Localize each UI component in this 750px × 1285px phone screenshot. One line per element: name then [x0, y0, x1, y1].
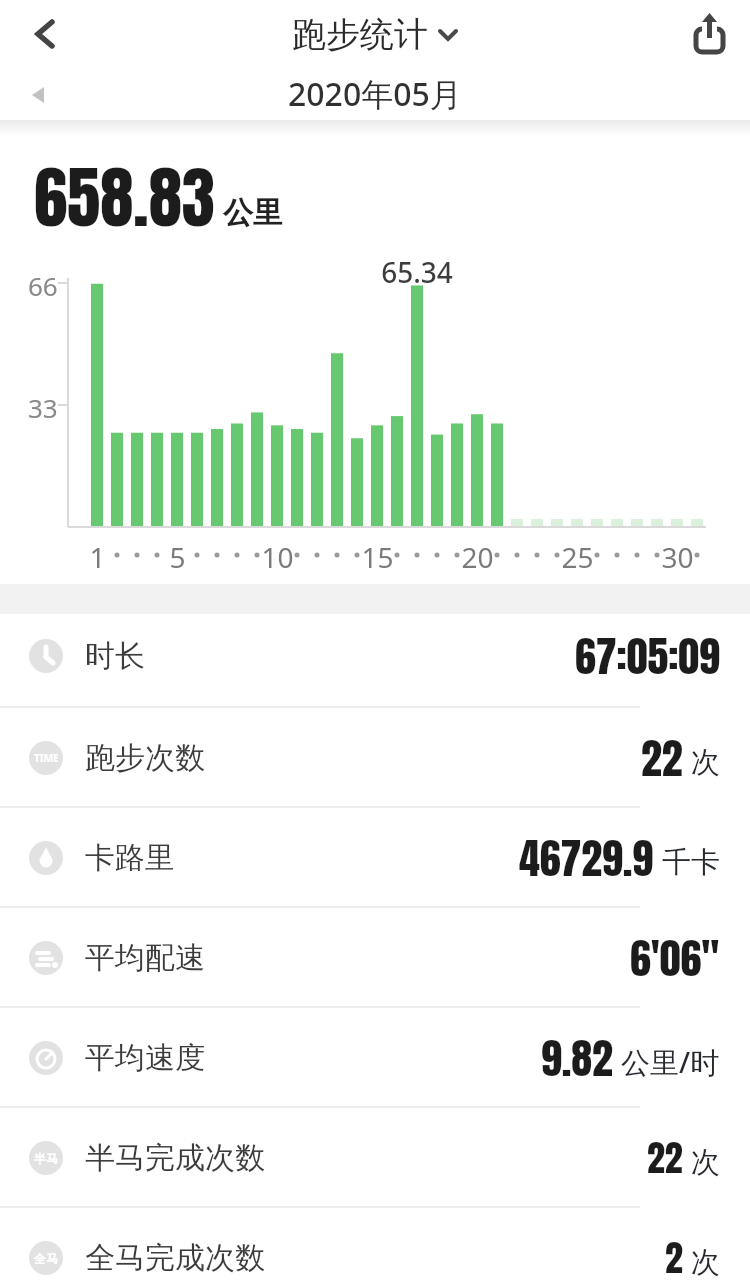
staticText: 半马完成次数 — [85, 1139, 265, 1177]
staticText: 2 — [665, 1231, 683, 1285]
staticText: 跑步次数 — [85, 739, 205, 777]
staticText: 平均速度 — [85, 1039, 205, 1077]
staticText: 全马 — [34, 1251, 58, 1266]
staticText: 平均配速 — [85, 939, 205, 977]
staticText: 33 — [28, 390, 58, 425]
button[interactable]: 卡路里 — [0, 808, 750, 908]
staticText: 5 — [169, 538, 186, 576]
button[interactable]: 时长 — [0, 614, 750, 708]
button[interactable]: 跑步统计 — [292, 13, 458, 56]
button[interactable]: 2020年05月 — [0, 68, 750, 120]
button[interactable]: 全马 — [0, 1208, 750, 1285]
staticText: TIME — [34, 751, 59, 765]
staticText: 跑步统计 — [292, 13, 428, 56]
staticText: 卡路里 — [85, 839, 175, 877]
staticText: 46729.9 — [519, 827, 654, 890]
button[interactable] — [0, 0, 90, 68]
staticText: 2020年05月 — [288, 72, 462, 116]
button[interactable]: 平均速度 — [0, 1008, 750, 1108]
staticText: 66 — [28, 268, 58, 303]
staticText: 67:05:09 — [575, 625, 720, 688]
button[interactable]: 平均配速 — [0, 908, 750, 1008]
staticText: 公里/时 — [621, 1042, 720, 1082]
staticText: 时长 — [85, 637, 145, 675]
staticText: 30 — [661, 538, 694, 576]
staticText: 千卡 — [662, 844, 720, 881]
staticText: 1 — [89, 538, 106, 576]
staticText: 公里 — [223, 194, 283, 232]
staticText: 10 — [261, 538, 294, 576]
button[interactable] — [668, 0, 750, 68]
staticText: 9.82 — [541, 1027, 613, 1090]
button[interactable]: TIME — [0, 708, 750, 808]
staticText: 次 — [691, 1144, 720, 1181]
staticText: 6'06" — [630, 927, 720, 990]
staticText: 22 — [647, 1131, 683, 1185]
staticText: 20 — [461, 538, 494, 576]
staticText: 半马 — [34, 1151, 58, 1166]
staticText: 658.83 — [34, 147, 215, 248]
staticText: 全马完成次数 — [85, 1239, 265, 1277]
staticText: 25 — [561, 538, 594, 576]
staticText: 22 — [641, 727, 683, 790]
staticText: 65.34 — [381, 253, 453, 291]
staticText: 次 — [691, 1244, 720, 1281]
staticText: 次 — [691, 744, 720, 781]
button[interactable]: 半马 — [0, 1108, 750, 1208]
staticText: 15 — [361, 538, 394, 576]
